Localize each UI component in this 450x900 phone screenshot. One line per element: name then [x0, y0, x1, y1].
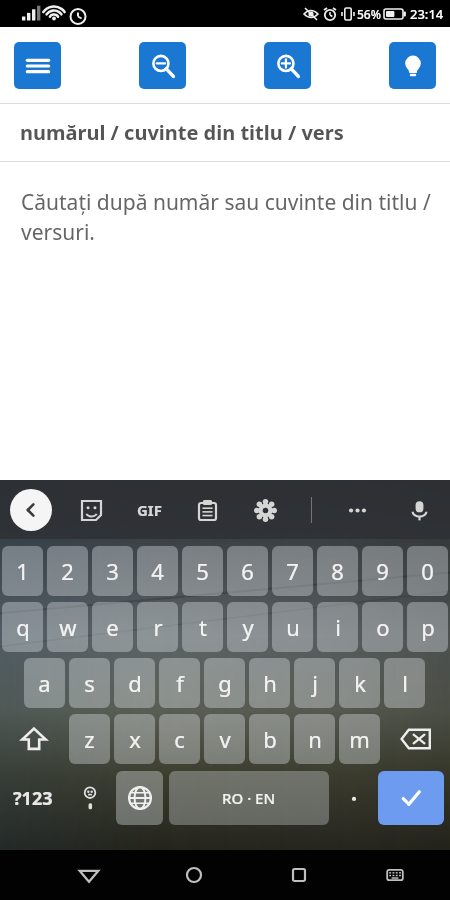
- staticText: 3: [106, 556, 119, 586]
- button[interactable]: n: [294, 714, 335, 764]
- staticText: 2: [61, 556, 74, 586]
- button[interactable]: Backspace: [384, 714, 448, 764]
- staticText: h: [263, 668, 277, 698]
- staticText: u: [286, 612, 300, 642]
- staticText: Căutați după număr sau cuvinte din titlu…: [21, 188, 432, 246]
- button[interactable]: d: [114, 658, 155, 708]
- button[interactable]: 4: [137, 546, 178, 596]
- button[interactable]: Shift: [2, 714, 65, 764]
- button[interactable]: k: [339, 658, 380, 708]
- button[interactable]: Change keyboard language: [116, 771, 163, 825]
- staticText: w: [59, 612, 77, 642]
- button[interactable]: 1: [2, 546, 43, 596]
- staticText: 23:14: [410, 5, 444, 23]
- button[interactable]: GIF: [132, 493, 166, 527]
- staticText: GIF: [137, 500, 162, 520]
- staticText: x: [129, 724, 141, 754]
- button[interactable]: Stickers: [74, 493, 108, 527]
- staticText: numărul / cuvinte din titlu / vers: [20, 119, 344, 146]
- staticText: i: [335, 612, 341, 642]
- button[interactable]: Back: [65, 851, 113, 899]
- button[interactable]: 8: [317, 546, 358, 596]
- button[interactable]: 9: [362, 546, 403, 596]
- button[interactable]: q: [2, 602, 43, 652]
- staticText: 7: [286, 556, 299, 586]
- button[interactable]: Settings: [248, 493, 282, 527]
- staticText: s: [84, 668, 95, 698]
- button[interactable]: j: [294, 658, 335, 708]
- button[interactable]: w: [47, 602, 88, 652]
- staticText: r: [153, 612, 163, 642]
- button[interactable]: More options: [340, 493, 374, 527]
- button[interactable]: t: [182, 602, 223, 652]
- button[interactable]: Recents: [275, 851, 323, 899]
- button[interactable]: p: [407, 602, 448, 652]
- button[interactable]: m: [339, 714, 380, 764]
- button[interactable]: i: [317, 602, 358, 652]
- button[interactable]: 5: [182, 546, 223, 596]
- button[interactable]: f: [159, 658, 200, 708]
- staticText: a: [38, 668, 51, 698]
- staticText: j: [312, 668, 318, 698]
- staticText: 56%: [357, 6, 381, 22]
- staticText: z: [84, 724, 95, 754]
- button[interactable]: Clipboard: [190, 493, 224, 527]
- staticText: y: [242, 612, 254, 642]
- button[interactable]: Menu: [14, 42, 61, 89]
- button[interactable]: r: [137, 602, 178, 652]
- button[interactable]: 6: [227, 546, 268, 596]
- button[interactable]: numărul / cuvinte din titlu / vers: [0, 104, 450, 161]
- staticText: m: [349, 724, 370, 754]
- staticText: 5: [196, 556, 209, 586]
- staticText: 8: [331, 556, 344, 586]
- staticText: g: [218, 668, 232, 698]
- button[interactable]: ?123: [2, 771, 64, 825]
- button[interactable]: Zoom in: [264, 42, 311, 89]
- button[interactable]: 2: [47, 546, 88, 596]
- staticText: n: [308, 724, 322, 754]
- button[interactable]: Zoom out: [139, 42, 186, 89]
- button[interactable]: o: [362, 602, 403, 652]
- staticText: l: [402, 668, 408, 698]
- staticText: 1: [16, 556, 29, 586]
- staticText: v: [219, 724, 231, 754]
- button[interactable]: z: [69, 714, 110, 764]
- button[interactable]: Enter: [378, 771, 444, 825]
- button[interactable]: u: [272, 602, 313, 652]
- button[interactable]: Home: [170, 851, 218, 899]
- button[interactable]: 7: [272, 546, 313, 596]
- button[interactable]: 3: [92, 546, 133, 596]
- staticText: c: [174, 724, 185, 754]
- button[interactable]: Back: [10, 489, 52, 531]
- staticText: 4: [151, 556, 164, 586]
- staticText: o: [376, 612, 390, 642]
- staticText: RO · EN: [222, 788, 276, 808]
- button[interactable]: c: [159, 714, 200, 764]
- button[interactable]: b: [249, 714, 290, 764]
- button[interactable]: s: [69, 658, 110, 708]
- button[interactable]: Period: [332, 771, 375, 825]
- staticText: q: [16, 612, 30, 642]
- staticText: f: [176, 668, 184, 698]
- staticText: p: [421, 612, 435, 642]
- button[interactable]: e: [92, 602, 133, 652]
- staticText: b: [263, 724, 277, 754]
- button[interactable]: Space: [169, 771, 329, 825]
- button[interactable]: g: [204, 658, 245, 708]
- button[interactable]: y: [227, 602, 268, 652]
- staticText: e: [106, 612, 119, 642]
- button[interactable]: Switch keyboard: [371, 851, 419, 899]
- staticText: 0: [421, 556, 434, 586]
- button[interactable]: Keep screen on: [389, 42, 436, 89]
- staticText: d: [128, 668, 142, 698]
- button[interactable]: a: [24, 658, 65, 708]
- button[interactable]: 0: [407, 546, 448, 596]
- button[interactable]: Voice input: [402, 493, 436, 527]
- button[interactable]: l: [384, 658, 425, 708]
- staticText: k: [354, 668, 366, 698]
- button[interactable]: v: [204, 714, 245, 764]
- button[interactable]: Emoji and comma: [66, 771, 113, 825]
- button[interactable]: h: [249, 658, 290, 708]
- staticText: 9: [376, 556, 389, 586]
- button[interactable]: x: [114, 714, 155, 764]
